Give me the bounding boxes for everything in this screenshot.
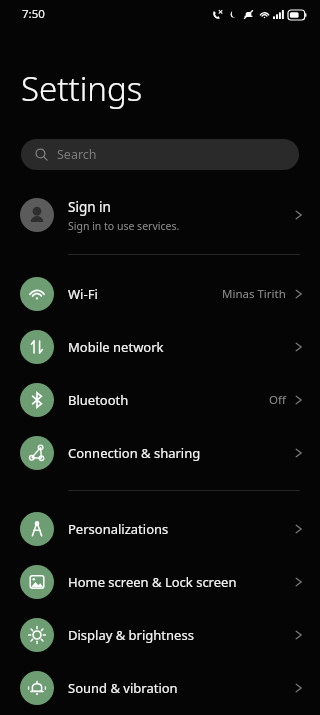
staticText: Personalizations <box>68 520 294 538</box>
staticText: Connection & sharing <box>68 444 294 462</box>
button[interactable]: Sound & vibration <box>0 661 320 714</box>
staticText: Mobile network <box>68 338 294 356</box>
staticText: Minas Tirith <box>222 286 286 302</box>
staticText: Home screen & Lock screen <box>68 573 294 591</box>
staticText: Off <box>269 392 286 408</box>
button[interactable]: Sign in <box>0 189 320 241</box>
staticText: Settings <box>21 66 143 111</box>
button[interactable]: Search <box>21 139 299 170</box>
staticText: Bluetooth <box>68 391 269 409</box>
staticText: 7:50 <box>22 6 45 22</box>
staticText: Sign in to use services. <box>68 219 180 233</box>
button[interactable]: Bluetooth <box>0 373 320 426</box>
button[interactable]: Home screen & Lock screen <box>0 555 320 608</box>
button[interactable]: Wi-Fi <box>0 267 320 320</box>
staticText: Sign in <box>68 198 111 216</box>
button[interactable]: Mobile network <box>0 320 320 373</box>
button[interactable]: Connection & sharing <box>0 426 320 479</box>
staticText: Sound & vibration <box>68 679 294 697</box>
staticText: Wi-Fi <box>68 285 222 303</box>
button[interactable]: Personalizations <box>0 502 320 555</box>
staticText: Display & brightness <box>68 626 294 644</box>
button[interactable]: Display & brightness <box>0 608 320 661</box>
staticText: Search <box>57 146 97 163</box>
